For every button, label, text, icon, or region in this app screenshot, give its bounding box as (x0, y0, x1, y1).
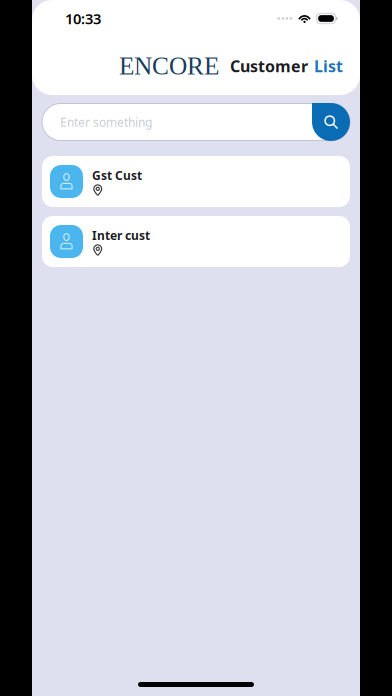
button[interactable]: Inter cust (42, 216, 350, 267)
button[interactable]: Search (312, 103, 350, 141)
staticText: Gst Cust (92, 167, 142, 183)
staticText: 10:33 (65, 9, 101, 28)
staticText: ENCORE (119, 52, 219, 80)
staticText: List (314, 55, 343, 77)
staticText: Enter something (60, 114, 152, 130)
button[interactable]: Gst Cust (42, 156, 350, 207)
staticText: Customer (230, 55, 308, 77)
staticText: Inter cust (92, 227, 150, 243)
